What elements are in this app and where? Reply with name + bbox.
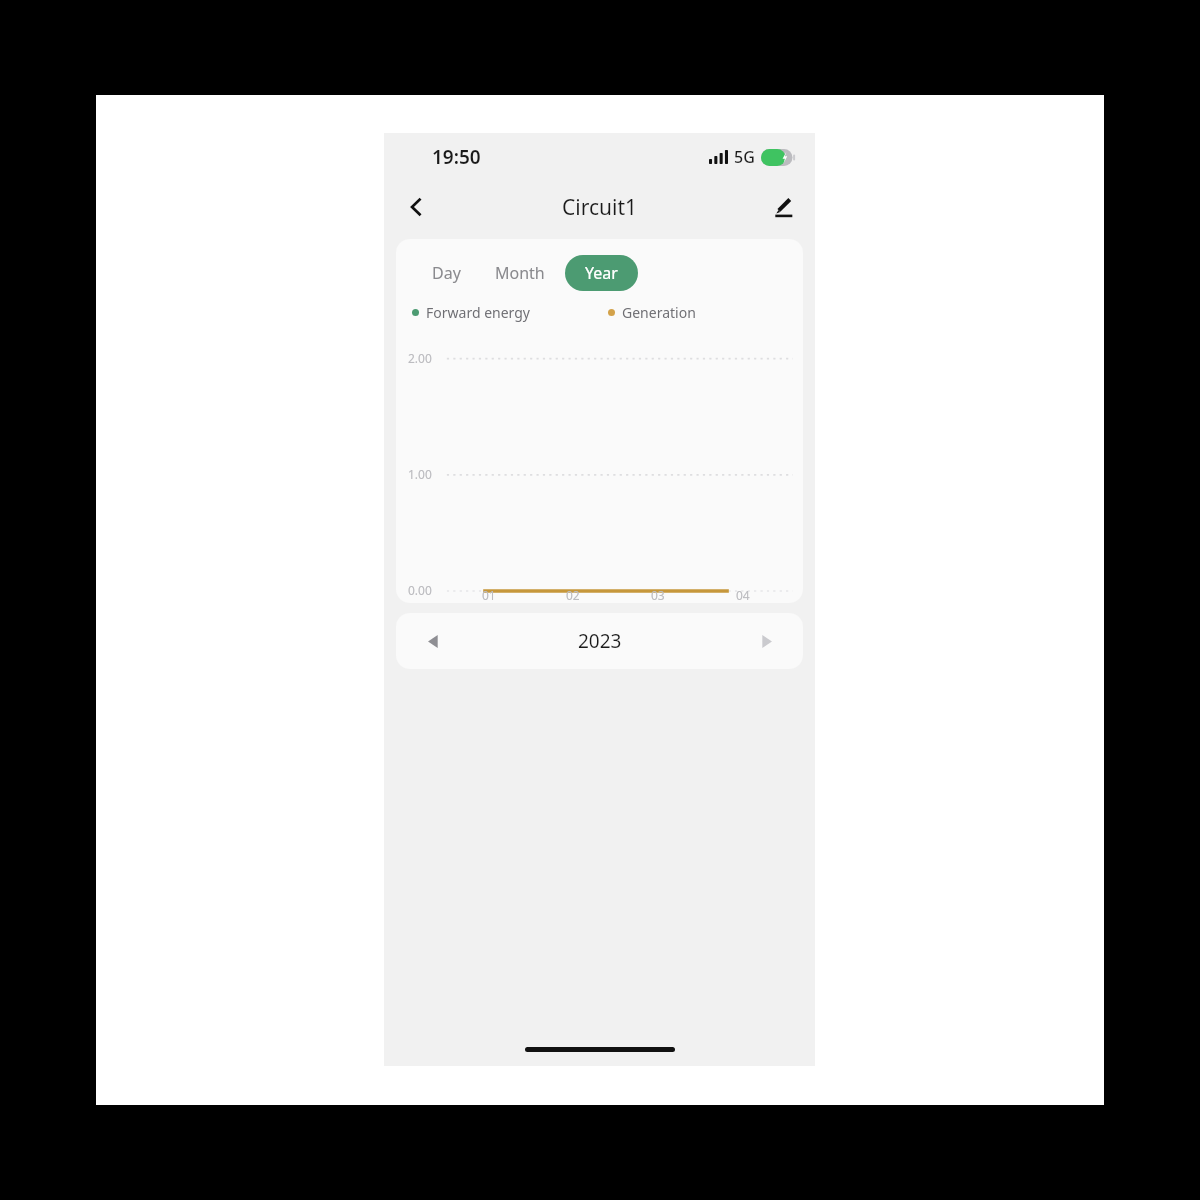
staticText: 2.00 xyxy=(408,350,432,366)
staticText: 02 xyxy=(566,587,580,603)
staticText: Month xyxy=(495,262,545,284)
button[interactable]: Generation xyxy=(608,303,696,322)
staticText: 2023 xyxy=(578,628,622,654)
staticText: 1.00 xyxy=(408,466,432,482)
staticText: Forward energy xyxy=(426,303,530,322)
button[interactable]: Forward energy xyxy=(412,303,530,322)
staticText: Generation xyxy=(622,303,696,322)
button[interactable]: Year xyxy=(565,255,638,291)
button[interactable]: Edit xyxy=(761,185,805,229)
staticText: Circuit1 xyxy=(562,193,638,222)
button[interactable]: Previous year xyxy=(412,620,454,662)
button[interactable]: Day xyxy=(426,255,467,291)
button[interactable]: Back xyxy=(394,185,438,229)
staticText: Year xyxy=(585,262,618,284)
staticText: Day xyxy=(432,262,461,284)
staticText: 04 xyxy=(736,587,750,603)
staticText: 01 xyxy=(482,587,496,603)
staticText: 5G xyxy=(734,146,755,168)
staticText: 0.00 xyxy=(408,582,432,598)
staticText: 19:50 xyxy=(432,144,481,170)
button[interactable]: Next year xyxy=(745,620,787,662)
staticText: 03 xyxy=(651,587,665,603)
button[interactable]: Month xyxy=(489,255,551,291)
